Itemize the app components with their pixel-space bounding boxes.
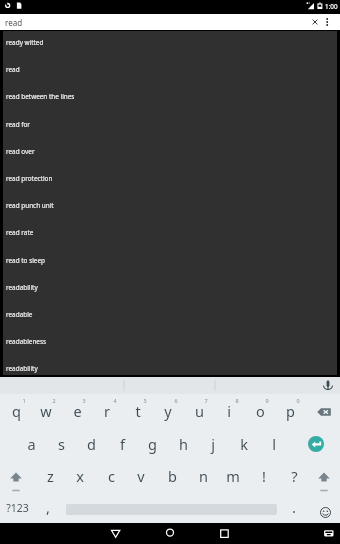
staticText: s [58,434,65,454]
staticText: read over [6,147,35,156]
staticText: , [46,497,50,517]
staticText: 3 [80,397,88,404]
button[interactable]: read over [3,140,337,167]
staticText: read to sleep [6,256,45,265]
staticText: l [272,434,276,454]
staticText: g [148,434,157,454]
button[interactable]: s [50,429,72,459]
button[interactable]: a [20,429,42,459]
button[interactable]: read [3,58,337,85]
button[interactable]: readableness [3,330,337,357]
staticText: u [195,401,204,421]
staticText: r [104,401,110,421]
staticText: readableness [6,337,47,346]
button[interactable]: , [37,492,59,522]
staticText: z [47,466,54,486]
button[interactable]: r [96,396,118,426]
staticText: readability [6,364,38,373]
staticText: read punch unit [6,201,54,210]
button[interactable]: q [5,396,27,426]
staticText: a [27,434,36,454]
button[interactable]: h [172,429,194,459]
button[interactable]: Recents [209,523,239,544]
staticText: e [73,401,82,421]
staticText: 2 [50,397,58,404]
staticText: i [227,401,231,421]
staticText: k [240,434,248,454]
staticText: read [6,65,20,74]
button[interactable]: Home [155,523,185,544]
staticText: 8 [233,397,241,404]
staticText: j [211,434,215,454]
staticText: 1:00 [325,2,338,11]
button[interactable]: ? [283,461,305,491]
button[interactable]: c [100,461,122,491]
button[interactable]: Back [100,523,131,544]
button[interactable]: read rate [3,221,337,248]
button[interactable]: m [222,461,244,491]
button[interactable]: Shift [310,468,338,496]
staticText: n [199,466,208,486]
button[interactable]: y [157,396,179,426]
button[interactable]: Change keyboard [310,523,334,544]
staticText: read rate [6,228,34,237]
staticText: t [135,401,141,421]
button[interactable]: x [69,461,91,491]
button[interactable]: read protection [3,167,337,194]
staticText: m [226,466,240,486]
button[interactable]: readability [3,276,337,303]
button[interactable]: u [188,396,210,426]
staticText: readability [6,283,38,292]
button[interactable]: o [249,396,271,426]
button[interactable]: w [35,396,57,426]
button[interactable]: ! [253,461,275,491]
button[interactable]: Enter [308,436,324,452]
button[interactable]: readability [3,357,337,384]
button[interactable]: e [66,396,88,426]
staticText: 4 [111,397,119,404]
staticText: ! [262,466,266,486]
staticText: ?123 [6,501,29,515]
button[interactable]: read [0,14,340,30]
button[interactable]: f [111,429,133,459]
button[interactable]: read for [3,113,337,140]
button[interactable]: k [233,429,255,459]
staticText: o [256,401,265,421]
button[interactable]: read between the lines [3,85,337,112]
button[interactable]: z [39,461,61,491]
button[interactable]: Shift [2,468,30,496]
staticText: 5 [141,397,149,404]
button[interactable]: ready witted [3,31,337,58]
button[interactable]: n [192,461,214,491]
button[interactable]: l [263,429,285,459]
button[interactable]: readable [3,303,337,330]
staticText: ready witted [6,38,44,47]
button[interactable]: read punch unit [3,194,337,221]
button[interactable]: j [202,429,224,459]
button[interactable]: b [161,461,183,491]
staticText: x [76,466,84,486]
button[interactable]: . [283,492,305,522]
staticText: 9 [263,397,271,404]
staticText: 6 [172,397,180,404]
button[interactable]: ?123 [0,493,34,523]
staticText: readable [6,310,33,319]
button[interactable]: p [279,396,301,426]
button[interactable]: i [218,396,240,426]
staticText: 7 [202,397,210,404]
staticText: w [40,401,52,421]
button[interactable]: Emoji [316,503,334,521]
button[interactable]: d [80,429,102,459]
button[interactable]: More options [319,14,335,30]
staticText: h [179,434,188,454]
button[interactable]: read to sleep [3,249,337,276]
button[interactable]: v [130,461,152,491]
button[interactable]: Backspace [310,398,338,426]
staticText: b [168,466,177,486]
button[interactable]: g [141,429,163,459]
button[interactable]: t [127,396,149,426]
staticText: v [137,466,145,486]
button[interactable]: Clear query [306,14,324,30]
staticText: . [292,497,296,517]
